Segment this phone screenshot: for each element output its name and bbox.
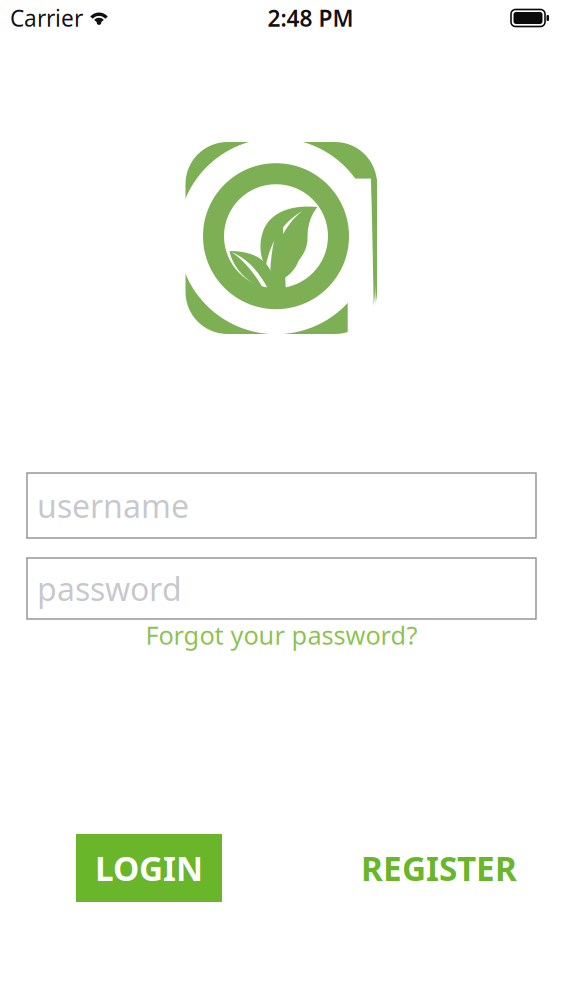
staticText: 2:48 PM — [267, 3, 353, 33]
button[interactable]: REGISTER — [361, 834, 517, 902]
button[interactable]: LOGIN — [76, 834, 222, 902]
staticText: username — [37, 484, 189, 527]
staticText: LOGIN — [95, 846, 203, 890]
staticText: Forgot your password? — [145, 618, 417, 652]
button[interactable]: Forgot your password? — [145, 619, 417, 651]
staticText: REGISTER — [361, 846, 517, 890]
staticText: password — [37, 567, 182, 610]
staticText: Carrier — [10, 3, 83, 33]
